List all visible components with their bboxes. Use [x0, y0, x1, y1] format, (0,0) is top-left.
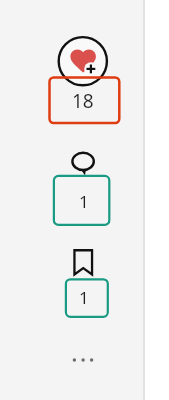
button[interactable]: Like, 18 reactions — [45, 30, 125, 130]
staticText: 1 — [79, 190, 89, 213]
button[interactable]: Comment, 1 comment — [45, 145, 120, 235]
button[interactable]: More options — [68, 350, 98, 370]
staticText: 18 — [72, 88, 94, 114]
button[interactable]: Bookmark, 1 saved — [60, 245, 115, 323]
staticText: 1 — [79, 286, 89, 309]
